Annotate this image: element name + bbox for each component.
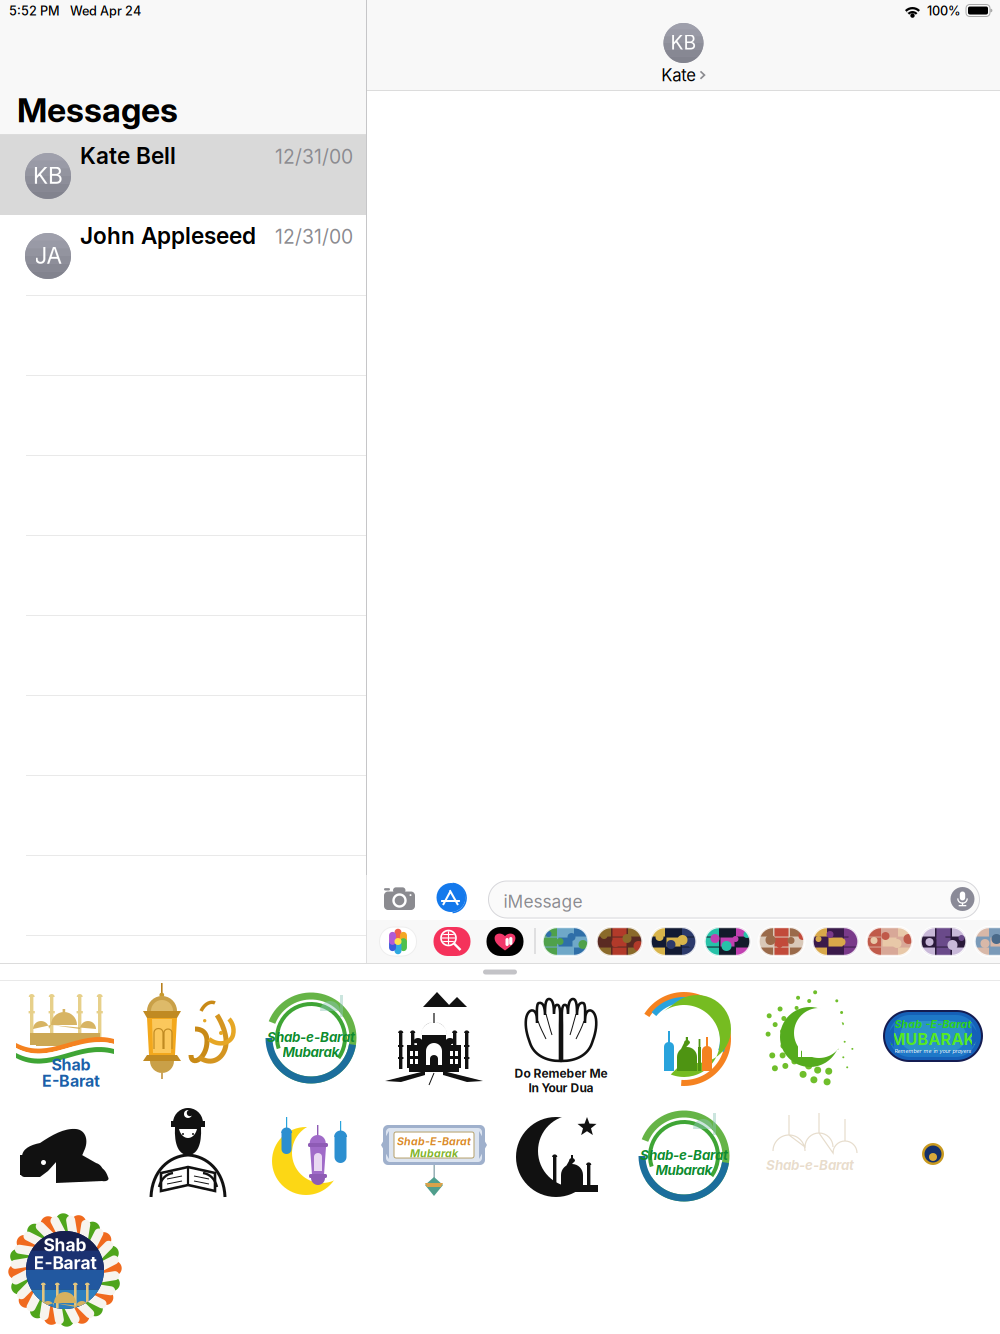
button[interactable]: Sticker xyxy=(629,981,739,1091)
button[interactable]: Sticker xyxy=(256,981,366,1091)
staticText: Mubarak xyxy=(655,1162,712,1178)
staticText: Mubarak xyxy=(410,1147,458,1160)
button[interactable]: Sticker pack xyxy=(758,927,804,956)
staticText: In Your Dua xyxy=(528,1080,593,1095)
staticText: John Appleseed xyxy=(80,222,256,249)
button[interactable]: JA xyxy=(0,215,366,295)
staticText: 5:52 PM xyxy=(9,3,60,19)
staticText: Remember me in your prayers xyxy=(894,1048,971,1054)
button[interactable]: Photos xyxy=(379,927,416,956)
button[interactable]: Sticker xyxy=(133,981,243,1091)
button[interactable]: Sticker pack xyxy=(704,927,750,956)
button[interactable]: Sticker pack xyxy=(866,927,912,956)
button[interactable]: KB xyxy=(661,23,706,85)
button[interactable]: Sticker xyxy=(10,1099,120,1209)
button[interactable]: Sticker xyxy=(10,1215,120,1325)
button[interactable]: Sticker pack xyxy=(650,927,696,956)
staticText: Shab-E-Barat xyxy=(397,1135,471,1148)
button[interactable]: KB xyxy=(0,135,366,215)
button[interactable]: Sticker pack xyxy=(596,927,642,956)
button[interactable]: Dictate xyxy=(950,887,974,911)
button[interactable]: Sticker xyxy=(755,981,865,1091)
staticText: Shab-e-Barat xyxy=(766,1157,854,1173)
staticText: Wed Apr 24 xyxy=(70,3,141,19)
button[interactable]: Sticker xyxy=(379,1099,489,1209)
staticText: Shab -E-Barat xyxy=(894,1018,971,1030)
staticText: iMessage xyxy=(503,891,582,912)
button[interactable]: Sticker xyxy=(878,1099,988,1209)
button[interactable]: Sticker xyxy=(256,1099,366,1209)
button[interactable]: Digital Touch xyxy=(486,927,523,956)
staticText: 12/31/00 xyxy=(275,145,353,168)
button[interactable]: App Store xyxy=(436,883,467,913)
staticText: KB xyxy=(670,31,696,54)
staticText: Shab-e-Barat xyxy=(640,1147,728,1163)
staticText: Do Remeber Me xyxy=(514,1066,607,1080)
button[interactable]: Camera xyxy=(382,885,416,911)
staticText: Shab xyxy=(43,1234,86,1255)
staticText: E-Barat xyxy=(33,1252,96,1273)
staticText: Shab xyxy=(51,1055,90,1074)
button[interactable]: Images xyxy=(433,927,470,956)
button[interactable]: Sticker xyxy=(133,1099,243,1209)
staticText: Mubarak xyxy=(282,1044,339,1060)
staticText: E-Barat xyxy=(42,1071,100,1091)
button[interactable]: Sticker xyxy=(506,981,616,1091)
staticText: Messages xyxy=(17,90,178,130)
button[interactable]: Sticker xyxy=(878,981,988,1091)
staticText: Kate xyxy=(661,65,696,85)
staticText: 100% xyxy=(927,3,961,19)
staticText: JA xyxy=(34,242,61,269)
staticText: Shab-e-Barat xyxy=(267,1029,355,1045)
button[interactable]: Sticker xyxy=(506,1099,616,1209)
button[interactable]: Sticker pack xyxy=(542,927,588,956)
staticText: 12/31/00 xyxy=(275,225,353,248)
button[interactable]: Sticker xyxy=(379,981,489,1091)
staticText: MUBARAK xyxy=(890,1029,975,1049)
button[interactable]: Sticker xyxy=(755,1099,865,1209)
staticText: Kate Bell xyxy=(80,142,176,169)
button[interactable]: Sticker xyxy=(10,981,120,1091)
button[interactable]: Sticker pack xyxy=(974,927,1000,956)
staticText: KB xyxy=(33,162,63,189)
button[interactable]: Sticker pack xyxy=(920,927,966,956)
button[interactable]: Sticker pack xyxy=(812,927,858,956)
button[interactable]: Sticker xyxy=(629,1099,739,1209)
